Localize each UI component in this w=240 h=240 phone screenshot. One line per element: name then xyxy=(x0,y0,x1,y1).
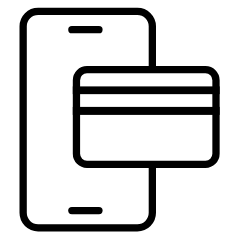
button[interactable]: Pay with card on your phone xyxy=(0,0,240,240)
